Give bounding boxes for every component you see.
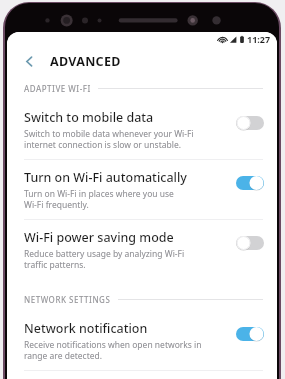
staticText: ADVANCED	[50, 53, 121, 70]
button[interactable]: Turn on Wi-Fi automatically	[7, 160, 277, 219]
button[interactable]: Network notification	[7, 311, 277, 370]
staticText: NETWORK SETTINGS	[24, 294, 111, 305]
staticText: Reduce battery usage by analyzing Wi-Fi …	[24, 248, 185, 270]
button[interactable]: Back	[18, 50, 40, 72]
staticText: 11:27	[247, 33, 271, 45]
button[interactable]: Switch to mobile data	[7, 100, 277, 159]
staticText: Receive notifications when open networks…	[24, 339, 202, 361]
staticText: ADAPTIVE WI-FI	[24, 83, 91, 94]
staticText: Turn on Wi-Fi automatically	[24, 169, 187, 186]
staticText: Wi-Fi power saving mode	[24, 229, 174, 246]
button[interactable]: Switch to mobile data off	[233, 113, 267, 133]
button[interactable]: Wi-Fi power saving mode off	[233, 233, 267, 253]
staticText: Turn on Wi-Fi in places where you use Wi…	[24, 188, 174, 210]
button[interactable]: Turn on Wi-Fi automatically on	[233, 173, 267, 193]
button[interactable]: Network notification on	[233, 324, 267, 344]
button[interactable]: Wi-Fi power saving mode	[7, 220, 277, 279]
staticText: Switch to mobile data whenever your Wi-F…	[24, 128, 194, 150]
staticText: Switch to mobile data	[24, 109, 154, 126]
staticText: Network notification	[24, 320, 148, 337]
